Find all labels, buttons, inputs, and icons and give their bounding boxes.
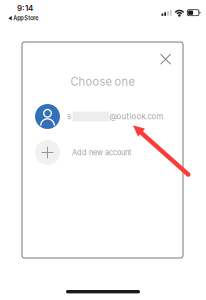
button[interactable]: Add new account — [35, 139, 170, 166]
staticText: Add new account — [72, 148, 131, 157]
button[interactable]: s — [35, 103, 170, 130]
staticText: Choose one — [70, 75, 134, 88]
staticText: 9:14 — [17, 3, 33, 13]
button[interactable]: Close — [155, 48, 177, 70]
staticText: App Store — [13, 15, 38, 22]
staticText: @outlook.com — [109, 112, 163, 121]
staticText: s — [67, 112, 71, 121]
